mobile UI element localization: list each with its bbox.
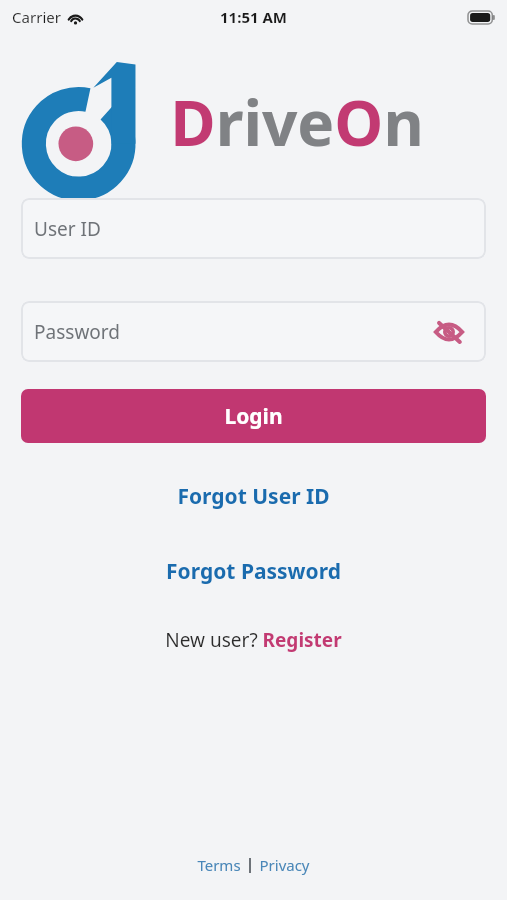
staticText: Forgot User ID [177,482,330,511]
button[interactable]: User ID [21,198,486,259]
staticText: Terms [197,855,241,875]
button[interactable]: New user? Register [0,623,507,657]
button[interactable]: Privacy [253,852,316,878]
staticText: Carrier [12,7,61,27]
staticText: User ID [34,216,101,242]
staticText: 11:51 AM [220,7,287,27]
staticText: Password [34,319,120,345]
button[interactable]: Forgot Password [0,552,507,591]
staticText: Login [224,402,283,431]
staticText: New user? Register [165,627,342,653]
button[interactable]: Forgot User ID [0,477,507,516]
button[interactable]: Login [21,389,486,443]
button[interactable]: Terms [191,852,247,878]
button[interactable]: Show password [432,315,466,349]
staticText: Forgot Password [166,557,341,586]
button[interactable]: Password [21,301,486,362]
staticText: DriveOn [170,80,424,164]
staticText: Privacy [259,855,310,875]
